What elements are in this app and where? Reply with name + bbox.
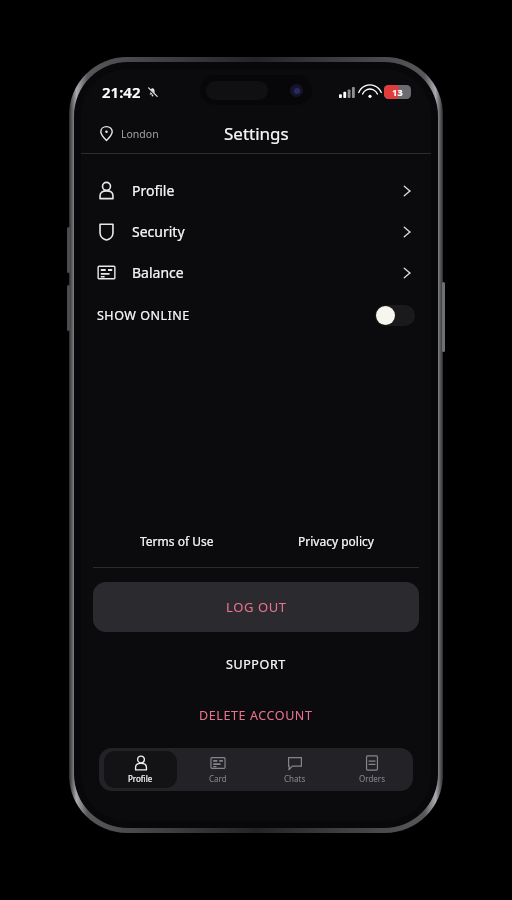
button[interactable]: Profile (81, 170, 431, 211)
button[interactable]: DELETE ACCOUNT (81, 701, 431, 730)
staticText: Balance (132, 263, 184, 282)
staticText: Chats (284, 773, 306, 784)
staticText: Profile (132, 181, 175, 200)
button[interactable]: Orders (335, 751, 408, 788)
button[interactable]: London (95, 122, 163, 145)
button[interactable]: Balance (81, 252, 431, 293)
button[interactable]: SHOW ONLINE (81, 293, 431, 337)
button[interactable]: Terms of Use (97, 523, 256, 559)
button[interactable]: Profile (104, 751, 177, 788)
staticText: DELETE ACCOUNT (199, 707, 313, 724)
staticText: Privacy policy (298, 533, 374, 549)
staticText: 21:42 (102, 82, 141, 102)
staticText: Orders (359, 773, 385, 784)
staticText: Profile (128, 773, 153, 784)
button[interactable]: SUPPORT (81, 650, 431, 679)
staticText: Settings (224, 122, 289, 145)
button[interactable]: Security (81, 211, 431, 252)
staticText: LOG OUT (226, 598, 287, 616)
button[interactable]: LOG OUT (93, 582, 419, 632)
staticText: SHOW ONLINE (97, 307, 190, 324)
button[interactable]: Card (181, 751, 254, 788)
staticText: Terms of Use (140, 533, 214, 549)
staticText: SUPPORT (226, 656, 286, 673)
staticText: Card (209, 773, 227, 784)
staticText: Security (132, 222, 185, 241)
staticText: 13 (392, 86, 403, 98)
button[interactable]: Chats (258, 751, 331, 788)
staticText: London (121, 127, 159, 141)
button[interactable]: Privacy policy (256, 523, 415, 559)
